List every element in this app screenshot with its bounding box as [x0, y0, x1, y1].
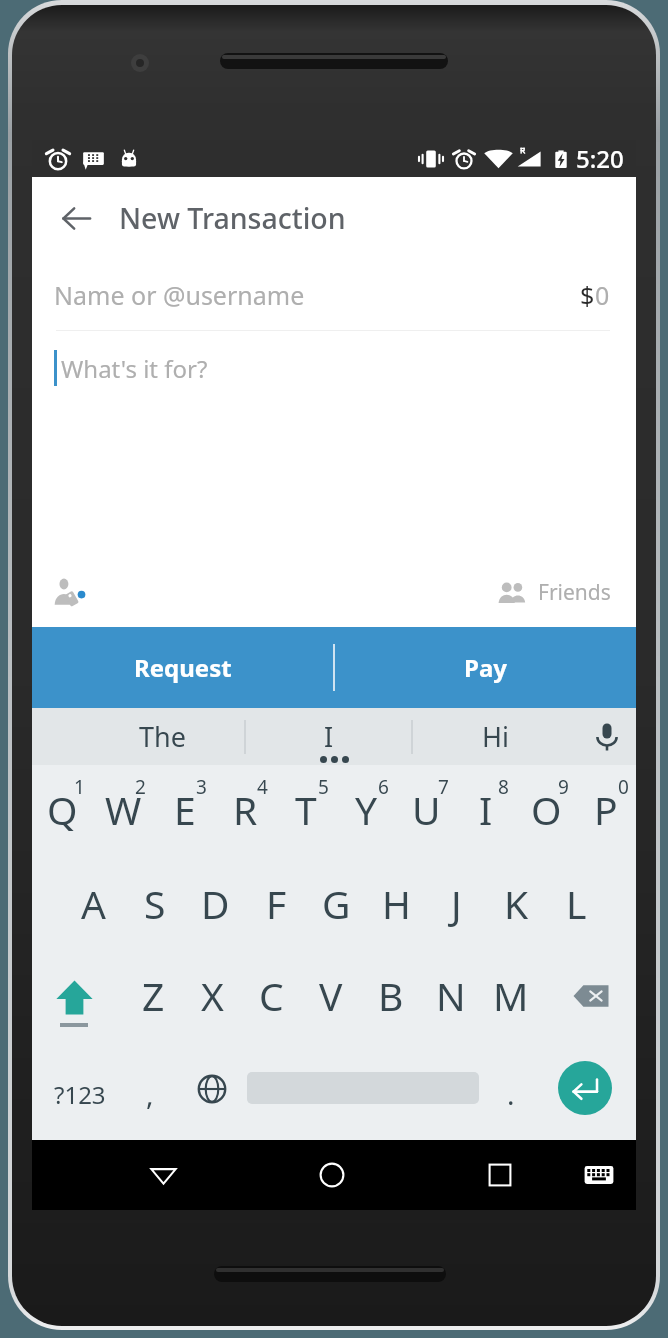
staticText: I [324, 718, 334, 755]
button[interactable]: Hi [413, 708, 578, 765]
staticText: U [412, 783, 441, 836]
button[interactable]: Request [32, 627, 333, 708]
staticText: Z [142, 969, 165, 1022]
button[interactable]: Home [292, 1140, 372, 1210]
staticText: 2 [135, 774, 146, 800]
staticText: O [531, 783, 562, 836]
staticText: B [378, 969, 404, 1022]
staticText: 7 [438, 774, 449, 800]
staticText: The [139, 718, 186, 755]
button[interactable]: Space [238, 1042, 488, 1134]
staticText: H [382, 877, 411, 930]
button[interactable]: A [63, 857, 124, 949]
staticText: X [201, 969, 224, 1022]
button[interactable]: S [124, 857, 185, 949]
button[interactable]: Q [32, 765, 93, 857]
staticText: 6 [378, 774, 389, 800]
staticText: Hi [482, 718, 509, 755]
staticText: J [451, 877, 462, 930]
button[interactable]: N [421, 949, 481, 1041]
button[interactable]: Back [53, 195, 99, 241]
button[interactable]: F [246, 857, 306, 949]
staticText: N [436, 969, 466, 1022]
button[interactable]: R [215, 765, 276, 857]
staticText: Request [134, 651, 232, 684]
button[interactable]: Enter [534, 1042, 636, 1134]
staticText: $ [580, 278, 595, 312]
button[interactable]: K [486, 857, 546, 949]
button[interactable]: , [128, 1048, 172, 1140]
staticText: 0 [595, 278, 610, 312]
button[interactable]: T [276, 765, 336, 857]
staticText: V [319, 969, 343, 1022]
staticText: P [594, 783, 618, 836]
button[interactable]: C [242, 949, 301, 1041]
button[interactable]: X [183, 949, 242, 1041]
button[interactable]: O [516, 765, 576, 857]
staticText: C [259, 969, 284, 1022]
button[interactable]: B [361, 949, 421, 1041]
staticText: M [493, 969, 529, 1022]
staticText: T [295, 783, 317, 836]
button[interactable]: Add person [46, 568, 94, 616]
staticText: 5 [318, 774, 329, 800]
staticText: F [266, 877, 287, 930]
button[interactable]: Shift [32, 949, 124, 1041]
staticText: 0 [618, 774, 629, 800]
button[interactable]: Friends [498, 578, 611, 607]
staticText: K [504, 877, 529, 930]
button[interactable]: Switch keyboard [562, 1140, 636, 1210]
button[interactable]: M [481, 949, 541, 1041]
button[interactable]: ?123 [32, 1048, 128, 1140]
button[interactable]: Change language [172, 1043, 252, 1135]
button[interactable]: Recent apps [460, 1140, 540, 1210]
staticText: , [146, 1075, 154, 1113]
staticText: 8 [498, 774, 509, 800]
staticText: What's it for? [61, 352, 208, 385]
staticText: W [105, 783, 142, 836]
staticText: 4 [257, 774, 268, 800]
button[interactable]: D [185, 857, 246, 949]
staticText: 9 [558, 774, 569, 800]
button[interactable]: V [301, 949, 361, 1041]
button[interactable]: Voice input [578, 708, 636, 765]
button[interactable]: E [154, 765, 215, 857]
staticText: D [201, 877, 230, 930]
staticText: L [566, 877, 587, 930]
button[interactable]: Backspace [541, 949, 636, 1041]
button[interactable]: . [488, 1048, 534, 1140]
staticText: A [81, 877, 106, 930]
staticText: Pay [464, 651, 507, 684]
staticText: G [322, 877, 351, 930]
staticText: 3 [196, 774, 207, 800]
button[interactable]: G [306, 857, 366, 949]
staticText: . [507, 1075, 515, 1113]
button[interactable]: H [366, 857, 426, 949]
button[interactable]: Pay [335, 627, 636, 708]
button[interactable]: U [396, 765, 456, 857]
button[interactable]: W [93, 765, 154, 857]
staticText: ?123 [54, 1078, 106, 1111]
staticText: New Transaction [119, 199, 346, 238]
staticText: Q [47, 783, 78, 836]
button[interactable]: The [80, 708, 244, 765]
button[interactable]: Z [124, 949, 183, 1041]
button[interactable]: Back [123, 1140, 203, 1210]
staticText: R [233, 783, 258, 836]
staticText: 1 [74, 774, 85, 800]
button[interactable]: I [456, 765, 516, 857]
staticText: Name or @username [54, 278, 305, 312]
button[interactable]: J [426, 857, 486, 949]
button[interactable]: I [246, 708, 411, 765]
button[interactable]: L [546, 857, 606, 949]
staticText: E [174, 783, 196, 836]
staticText: Friends [538, 578, 611, 607]
staticText: 5:20 [576, 142, 624, 175]
button[interactable]: Y [336, 765, 396, 857]
button[interactable]: P [576, 765, 636, 857]
staticText: I [479, 783, 493, 836]
staticText: S [144, 877, 166, 930]
staticText: Y [355, 783, 378, 836]
